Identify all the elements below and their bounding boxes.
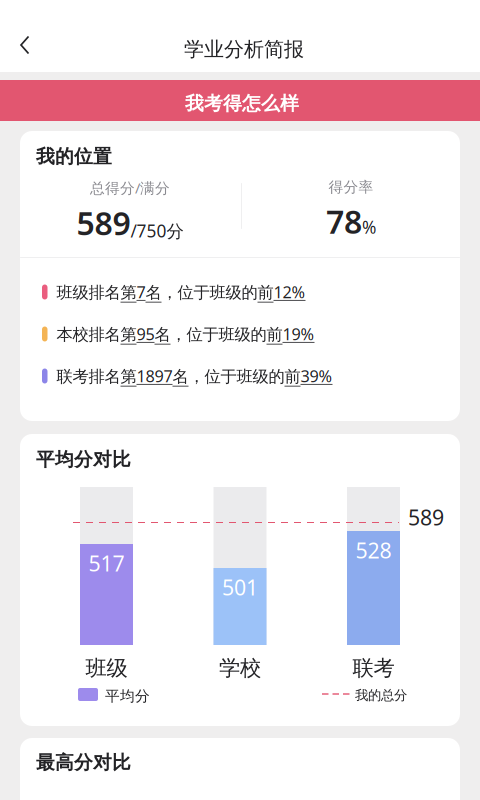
staticText: 最高分对比 bbox=[36, 751, 131, 774]
button[interactable]: 返回 bbox=[3, 23, 47, 67]
staticText: 我考得怎么样 bbox=[185, 92, 299, 115]
staticText: 平均分 bbox=[105, 687, 150, 705]
staticText: 589 bbox=[408, 503, 444, 531]
staticText: 总得分/满分 bbox=[90, 178, 170, 197]
staticText: 平均分对比 bbox=[36, 448, 131, 471]
staticText: 联考 bbox=[352, 655, 394, 681]
staticText: 501 bbox=[222, 573, 258, 601]
staticText: 得分率 bbox=[328, 178, 373, 196]
staticText: 78% bbox=[326, 200, 376, 242]
staticText: 班级排名第7名，位于班级的前12% bbox=[56, 281, 305, 303]
staticText: 联考排名第1897名，位于班级的前39% bbox=[56, 365, 332, 387]
staticText: 学业分析简报 bbox=[184, 37, 304, 62]
staticText: 528 bbox=[355, 536, 391, 564]
staticText: 589/750分 bbox=[76, 201, 183, 244]
staticText: 517 bbox=[88, 549, 124, 577]
staticText: 我的位置 bbox=[36, 145, 112, 168]
staticText: 班级 bbox=[85, 655, 127, 681]
staticText: 本校排名第95名，位于班级的前19% bbox=[56, 323, 314, 345]
staticText: 我的总分 bbox=[355, 687, 407, 703]
staticText: 学校 bbox=[219, 655, 261, 681]
